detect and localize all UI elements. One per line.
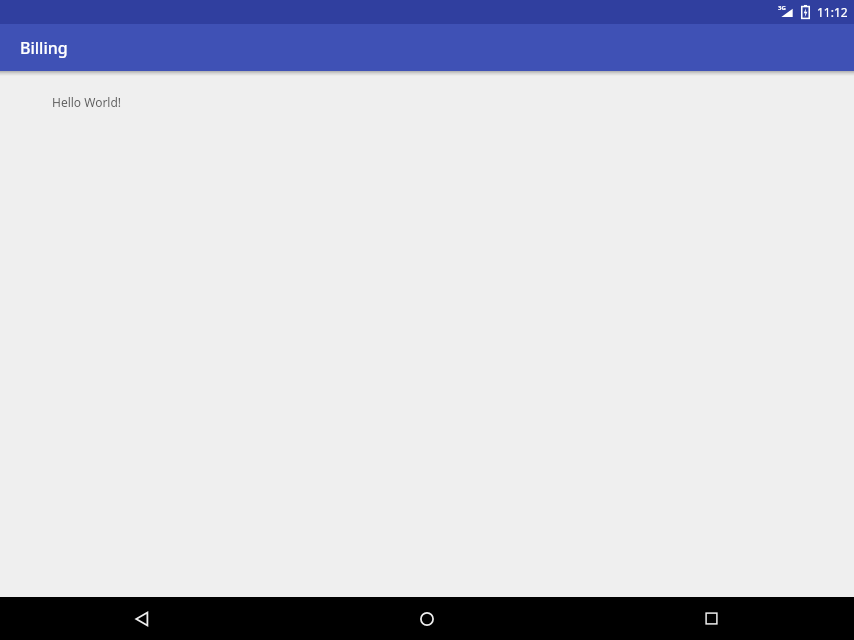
staticText: 3G bbox=[778, 4, 786, 12]
button[interactable]: Home bbox=[284, 597, 569, 640]
staticText: Hello World! bbox=[52, 94, 122, 110]
button[interactable]: Back bbox=[0, 597, 284, 640]
button[interactable]: Recent apps bbox=[569, 597, 854, 640]
staticText: 11:12 bbox=[817, 4, 848, 20]
staticText: Billing bbox=[20, 37, 68, 59]
